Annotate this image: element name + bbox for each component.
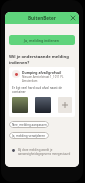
staticText: BuitenBeter xyxy=(28,15,56,21)
button[interactable]: Add photo xyxy=(58,97,72,113)
button[interactable]: Ja, melding indienen xyxy=(9,35,75,45)
button[interactable]: Nee, melding aanpassen xyxy=(9,121,49,128)
staticText: Er ligt veel hard oud afval naast de con… xyxy=(12,86,72,94)
staticText: Bij deze melding wordt je aanwezigheidsg… xyxy=(18,148,75,156)
button[interactable]: Close xyxy=(69,14,77,22)
staticText: Nee, melding aanpassen xyxy=(12,123,47,127)
staticText: Wil je onderstaande melding indienen? xyxy=(9,54,75,65)
staticText: Ja, melding verwijderen xyxy=(12,134,46,138)
staticText: Dumping afval/grofvuil xyxy=(22,70,62,75)
staticText: Nieuwe Amstelstraat 1, 1011 PL Amsterdam xyxy=(22,75,72,83)
staticText: Ja, melding indienen xyxy=(24,38,60,43)
button[interactable]: Ja, melding verwijderen xyxy=(9,132,49,139)
